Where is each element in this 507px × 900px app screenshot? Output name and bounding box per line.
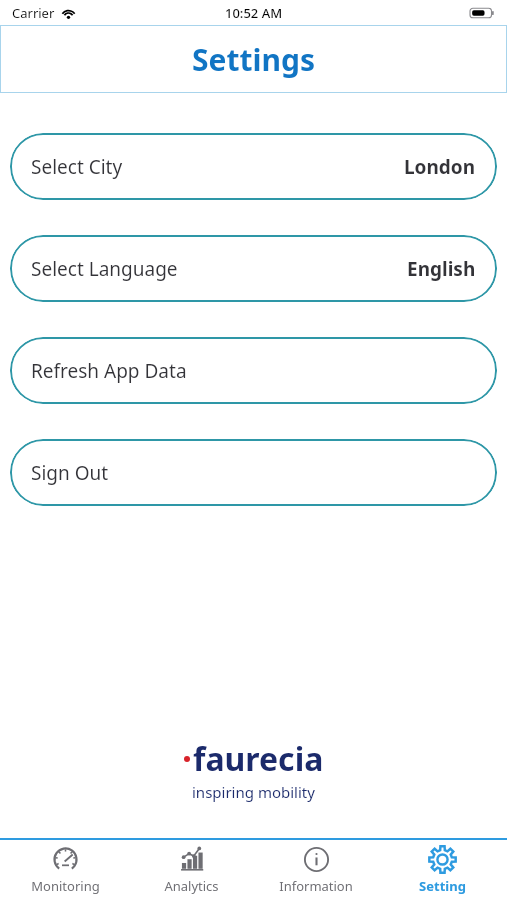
staticText: faurecia: [193, 737, 324, 781]
button[interactable]: Refresh App Data: [10, 337, 497, 404]
button[interactable]: Select Language: [10, 235, 497, 302]
staticText: 10:52 AM: [225, 4, 283, 22]
staticText: Monitoring: [31, 877, 100, 895]
staticText: Setting: [419, 877, 466, 895]
staticText: Select City: [31, 154, 123, 180]
staticText: English: [407, 256, 476, 282]
staticText: Refresh App Data: [31, 358, 187, 384]
button[interactable]: Information: [256, 840, 376, 900]
staticText: London: [404, 154, 476, 180]
staticText: Select Language: [31, 256, 178, 282]
button[interactable]: Monitoring: [5, 840, 125, 900]
button[interactable]: Select City: [10, 133, 497, 200]
button[interactable]: Setting: [382, 840, 502, 900]
button[interactable]: Analytics: [131, 840, 251, 900]
button[interactable]: Sign Out: [10, 439, 497, 506]
staticText: Settings: [192, 39, 315, 80]
staticText: Sign Out: [31, 460, 109, 486]
staticText: Information: [279, 877, 353, 895]
staticText: Carrier: [12, 4, 55, 22]
staticText: Analytics: [164, 877, 219, 895]
staticText: inspiring mobility: [192, 782, 315, 802]
